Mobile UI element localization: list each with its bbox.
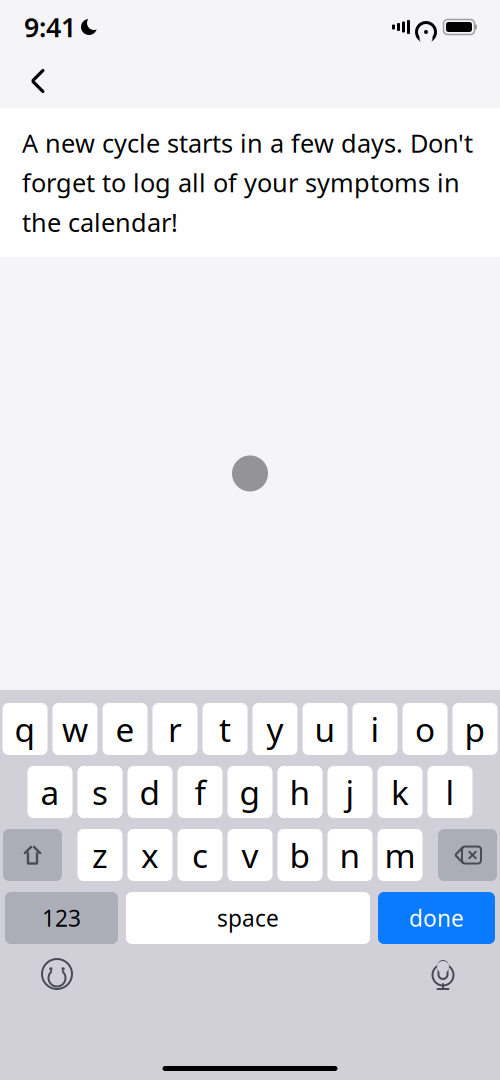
button[interactable]: o bbox=[402, 703, 447, 755]
staticText: g bbox=[239, 770, 260, 814]
button[interactable]: f bbox=[177, 766, 222, 818]
staticText: done bbox=[409, 903, 464, 933]
button[interactable]: x bbox=[127, 829, 172, 881]
button[interactable]: s bbox=[77, 766, 122, 818]
staticText: c bbox=[192, 833, 208, 877]
staticText: d bbox=[139, 770, 160, 814]
staticText: f bbox=[194, 770, 205, 814]
button[interactable]: p bbox=[452, 703, 497, 755]
button[interactable]: t bbox=[202, 703, 247, 755]
button[interactable]: j bbox=[327, 766, 372, 818]
staticText: p bbox=[464, 707, 485, 751]
button[interactable]: u bbox=[302, 703, 347, 755]
button[interactable]: done bbox=[378, 892, 495, 944]
button[interactable]: l bbox=[427, 766, 472, 818]
button[interactable]: g bbox=[227, 766, 272, 818]
button[interactable]: r bbox=[152, 703, 197, 755]
staticText: 9:41 bbox=[24, 9, 76, 45]
button[interactable]: space bbox=[126, 892, 370, 944]
staticText: v bbox=[241, 833, 258, 877]
button[interactable]: h bbox=[277, 766, 322, 818]
button[interactable]: 123 bbox=[5, 892, 118, 944]
button[interactable]: b bbox=[277, 829, 322, 881]
staticText: e bbox=[115, 707, 134, 751]
staticText: i bbox=[370, 707, 379, 751]
staticText: j bbox=[345, 770, 354, 814]
button[interactable]: z bbox=[77, 829, 122, 881]
staticText: a bbox=[40, 770, 59, 814]
button[interactable]: n bbox=[327, 829, 372, 881]
button[interactable]: Shift bbox=[3, 829, 62, 881]
button[interactable]: m bbox=[377, 829, 422, 881]
staticText: r bbox=[168, 707, 182, 751]
staticText: 123 bbox=[42, 903, 81, 933]
button[interactable]: Back bbox=[16, 59, 60, 103]
staticText: q bbox=[14, 707, 35, 751]
staticText: s bbox=[92, 770, 108, 814]
button[interactable]: q bbox=[2, 703, 47, 755]
button[interactable]: y bbox=[252, 703, 297, 755]
button[interactable]: Delete bbox=[438, 829, 497, 881]
button[interactable]: d bbox=[127, 766, 172, 818]
staticText: space bbox=[217, 903, 279, 933]
staticText: x bbox=[141, 833, 159, 877]
button[interactable]: e bbox=[102, 703, 147, 755]
staticText: l bbox=[445, 770, 454, 814]
button[interactable]: v bbox=[227, 829, 272, 881]
staticText: u bbox=[314, 707, 335, 751]
button[interactable]: Dictation bbox=[421, 952, 465, 996]
staticText: m bbox=[384, 833, 415, 877]
staticText: n bbox=[339, 833, 360, 877]
button[interactable]: k bbox=[377, 766, 422, 818]
button[interactable]: c bbox=[177, 829, 222, 881]
staticText: y bbox=[266, 707, 283, 751]
staticText: k bbox=[391, 770, 409, 814]
button[interactable]: w bbox=[52, 703, 97, 755]
staticText: A new cycle starts in a few days. Don't … bbox=[22, 126, 473, 239]
staticText: t bbox=[219, 707, 231, 751]
staticText: b bbox=[289, 833, 310, 877]
staticText: h bbox=[289, 770, 310, 814]
staticText: z bbox=[92, 833, 108, 877]
staticText: w bbox=[62, 707, 88, 751]
button[interactable]: a bbox=[27, 766, 72, 818]
staticText: o bbox=[415, 707, 435, 751]
button[interactable]: i bbox=[352, 703, 397, 755]
button[interactable]: Emoji bbox=[35, 952, 79, 996]
